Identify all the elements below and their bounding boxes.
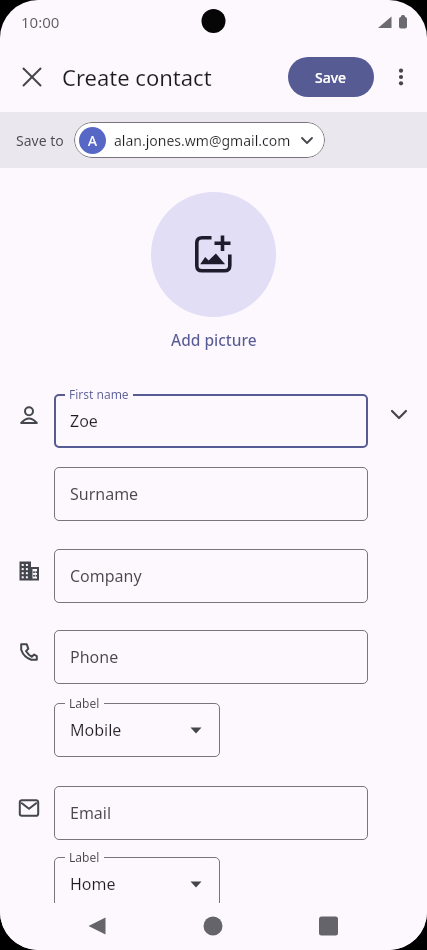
staticText: Zoe <box>70 410 98 432</box>
staticText: Add picture <box>171 329 257 350</box>
staticText: Save <box>315 68 347 87</box>
staticText: Create contact <box>62 62 212 92</box>
button[interactable]: Company <box>54 549 368 603</box>
staticText: Email <box>70 802 112 824</box>
button[interactable] <box>151 192 276 317</box>
staticText: First name <box>69 386 129 402</box>
button[interactable]: Surname <box>54 467 368 521</box>
button[interactable] <box>12 57 52 97</box>
button[interactable]: Zoe <box>54 394 368 448</box>
staticText: Mobile <box>70 719 122 741</box>
button[interactable]: Home <box>54 857 220 911</box>
staticText: Save to <box>16 131 64 150</box>
button[interactable]: Email <box>54 786 368 840</box>
button[interactable]: Mobile <box>54 703 220 757</box>
button[interactable]: Phone <box>54 630 368 684</box>
button[interactable] <box>0 903 143 950</box>
staticText: 10:00 <box>21 12 60 32</box>
staticText: alan.jones.wm@gmail.com <box>114 131 291 150</box>
button[interactable] <box>380 56 422 98</box>
button[interactable]: Save <box>288 57 374 97</box>
button[interactable]: A <box>74 122 325 158</box>
staticText: Label <box>69 695 100 711</box>
button[interactable] <box>285 903 427 950</box>
button[interactable] <box>143 903 285 950</box>
staticText: Phone <box>70 646 119 668</box>
staticText: Home <box>70 873 116 895</box>
button[interactable]: Add picture <box>171 329 257 350</box>
button[interactable] <box>387 402 411 426</box>
staticText: Surname <box>70 483 139 505</box>
staticText: Company <box>70 565 142 587</box>
staticText: A <box>88 131 97 150</box>
staticText: Label <box>69 849 100 865</box>
